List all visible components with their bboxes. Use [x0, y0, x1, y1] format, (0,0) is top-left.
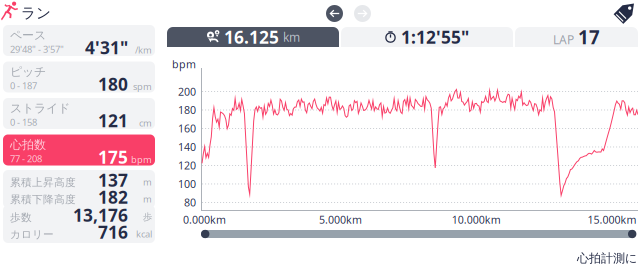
button[interactable]: Distance range [0, 0, 638, 16]
staticText: 歩 [143, 211, 152, 223]
staticText: 5.000km [319, 212, 362, 227]
staticText: ストライド [10, 101, 70, 116]
button[interactable]: ペース [3, 25, 155, 56]
button[interactable]: LAP [515, 27, 638, 47]
staticText: 1:12'55" [401, 25, 469, 48]
button[interactable]: ピッチ [3, 61, 155, 92]
staticText: 0 - 187 [10, 79, 37, 92]
staticText: 200 [178, 84, 196, 99]
staticText: 100 [178, 177, 196, 191]
staticText: 17 [578, 25, 600, 49]
staticText: spm [133, 80, 152, 93]
staticText: km [283, 29, 300, 45]
button[interactable]: 心拍数 [3, 134, 155, 165]
staticText: kcal [136, 228, 152, 240]
staticText: 140 [178, 140, 196, 154]
staticText: ラン [21, 4, 51, 22]
button[interactable]: 16.125 [167, 27, 339, 47]
staticText: 心拍計測に [577, 251, 637, 266]
button[interactable]: 累積上昇高度 [3, 170, 155, 208]
staticText: 121 [98, 109, 128, 132]
staticText: bpm [172, 57, 196, 71]
staticText: 0 - 158 [10, 116, 37, 128]
staticText: カロリー [10, 228, 54, 241]
staticText: m [143, 193, 152, 205]
button[interactable]: 歩数 [3, 205, 155, 243]
staticText: 歩数 [10, 211, 32, 224]
button[interactable]: Next activity [354, 5, 371, 22]
button[interactable]: ストライド [3, 98, 155, 129]
staticText: ペース [10, 28, 46, 43]
staticText: 10.000km [452, 212, 501, 227]
staticText: 29'48" - 3'57" [10, 43, 64, 55]
staticText: 累積下降高度 [10, 193, 76, 206]
staticText: 120 [178, 158, 196, 173]
staticText: 累積上昇高度 [10, 176, 76, 189]
staticText: 心拍数 [10, 137, 46, 152]
staticText: 4'31" [85, 36, 128, 59]
staticText: cm [139, 117, 152, 129]
staticText: 0.000km [183, 212, 226, 227]
staticText: 13,176 [73, 203, 128, 226]
staticText: 160 [178, 121, 196, 136]
staticText: ピッチ [10, 64, 46, 79]
staticText: LAP [553, 32, 574, 47]
staticText: 16.125 [224, 25, 279, 48]
staticText: 77 - 208 [10, 152, 42, 165]
staticText: 716 [98, 220, 128, 243]
button[interactable]: Tags [613, 2, 635, 24]
staticText: 80 [184, 195, 196, 210]
button[interactable]: Previous activity [326, 5, 343, 22]
staticText: 15.000km [587, 212, 636, 227]
staticText: 175 [98, 145, 128, 168]
staticText: /km [135, 44, 152, 56]
staticText: bpm [131, 153, 152, 166]
button[interactable]: 1:12'55" [341, 27, 513, 47]
staticText: 180 [98, 72, 128, 95]
staticText: 137 [98, 168, 128, 191]
staticText: 180 [178, 103, 196, 117]
staticText: m [143, 176, 152, 188]
staticText: 182 [98, 185, 128, 208]
